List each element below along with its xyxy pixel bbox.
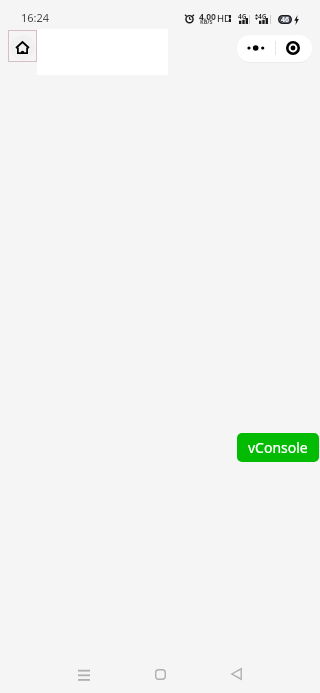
button[interactable]: vConsole xyxy=(237,433,319,462)
staticText: 4.00 xyxy=(199,11,216,23)
staticText: 4G xyxy=(238,12,247,21)
button[interactable]: Back xyxy=(214,655,258,693)
staticText: vConsole xyxy=(248,438,308,457)
staticText: 4G xyxy=(258,12,267,21)
staticText: HD xyxy=(217,12,232,25)
button[interactable]: Home xyxy=(8,30,37,62)
button[interactable]: Recent apps xyxy=(62,655,106,693)
staticText: 46 xyxy=(281,15,290,24)
button[interactable]: Home xyxy=(138,655,182,693)
button[interactable]: More options xyxy=(237,35,275,61)
staticText: 16:24 xyxy=(21,10,50,25)
staticText: KB/S xyxy=(200,18,213,25)
button[interactable]: Close xyxy=(275,35,311,61)
